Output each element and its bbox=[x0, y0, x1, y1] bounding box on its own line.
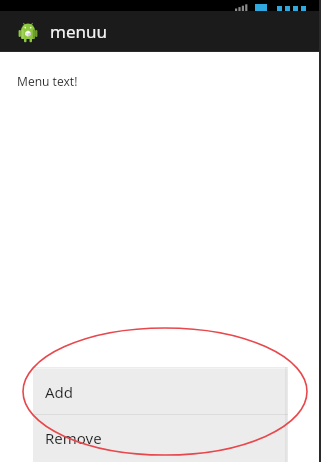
staticText: Remove bbox=[45, 428, 102, 448]
staticText: Menu text! bbox=[17, 73, 78, 89]
staticText: menuu bbox=[50, 20, 108, 43]
other: App icon bbox=[16, 20, 40, 44]
button[interactable]: App icon bbox=[0, 11, 321, 52]
button[interactable]: Add bbox=[33, 369, 288, 414]
button[interactable]: Remove bbox=[33, 415, 288, 460]
staticText: Add bbox=[45, 382, 74, 402]
